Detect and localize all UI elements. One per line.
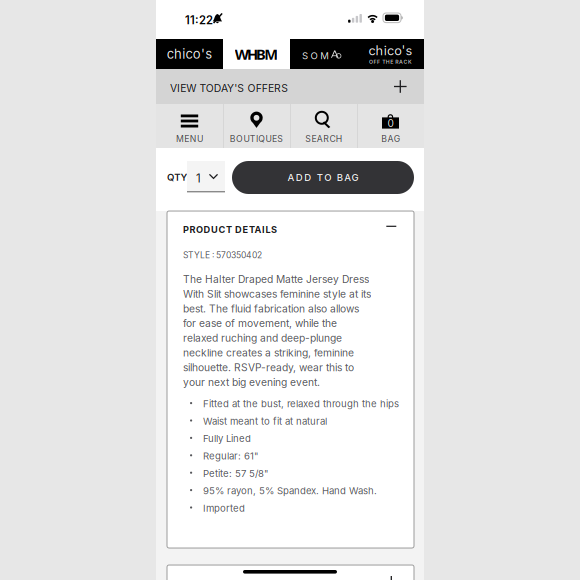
button[interactable]: BOUTIQUES [223,104,290,148]
button[interactable]: 0 [357,104,424,148]
staticText: chico's [368,43,413,58]
staticText: SOM [302,50,329,62]
staticText: 95% rayon, 5% Spandex. Hand Wash. [203,485,377,497]
staticText: Fitted at the bust, relaxed through the … [203,398,399,410]
staticText: VIEW TODAY'S OFFERS [170,82,288,95]
staticText: SEARCH [305,133,342,144]
staticText: STYLE : 570350402 [183,250,262,260]
staticText: Fully Lined [203,433,251,444]
staticText: Petite: 57 5/8" [203,468,268,479]
staticText: Waist meant to fit at natural [203,415,327,427]
button[interactable]: SHIPPING & RETURNS [167,565,414,580]
staticText: QTY [167,171,187,183]
staticText: 1 [196,171,201,185]
staticText: WHBM [235,44,278,64]
staticText: Imported [203,502,245,514]
staticText: MENU [176,133,203,144]
staticText: chico's [167,46,212,62]
staticText: PRODUCT DETAILS [183,224,277,235]
button[interactable]: SEARCH [290,104,357,148]
staticText: ADD TO BAG [287,172,358,183]
staticText: BAG [381,133,400,144]
button[interactable]: chico's [357,39,424,69]
button[interactable]: PRODUCT DETAILS [183,222,398,236]
staticText: OFF THE RACK [369,59,412,65]
staticText: 0 [387,117,393,129]
button[interactable]: VIEW TODAY'S OFFERS [156,69,424,104]
button[interactable]: ADD TO BAG [232,161,414,194]
button[interactable]: WHBM [223,39,290,69]
button[interactable]: MENU [156,104,223,148]
staticText: 11:22 [185,13,213,27]
button[interactable]: 1 [187,161,225,193]
staticText: BOUTIQUES [230,133,283,144]
button[interactable]: SOM [290,39,357,69]
button[interactable]: chico's [156,39,223,69]
staticText: The Halter Draped Matte Jersey Dress Wit… [183,273,371,388]
staticText: Regular: 61" [203,450,258,462]
